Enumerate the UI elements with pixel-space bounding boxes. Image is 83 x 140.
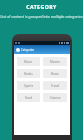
button[interactable]: Movies xyxy=(43,57,67,66)
staticText: Sports xyxy=(24,84,34,88)
staticText: Categories xyxy=(21,48,35,52)
button[interactable]: Food xyxy=(17,93,40,102)
button[interactable]: Sports xyxy=(17,81,40,90)
button[interactable]: Categories xyxy=(14,45,70,54)
staticText: News xyxy=(51,72,59,76)
button[interactable]: Travel xyxy=(43,81,67,90)
staticText: Books xyxy=(24,72,33,76)
staticText: List of content is grouped into multiple… xyxy=(0,14,83,18)
staticText: CATEGORY xyxy=(26,3,57,10)
button[interactable]: News xyxy=(43,69,67,78)
button[interactable]: Science xyxy=(43,93,67,102)
button[interactable]: Music xyxy=(17,57,40,66)
button[interactable]: Books xyxy=(17,69,40,78)
staticText: Food xyxy=(25,96,33,100)
staticText: Movies xyxy=(50,60,60,64)
staticText: Science xyxy=(50,96,61,100)
staticText: Travel xyxy=(51,84,60,88)
staticText: Music xyxy=(24,60,33,64)
